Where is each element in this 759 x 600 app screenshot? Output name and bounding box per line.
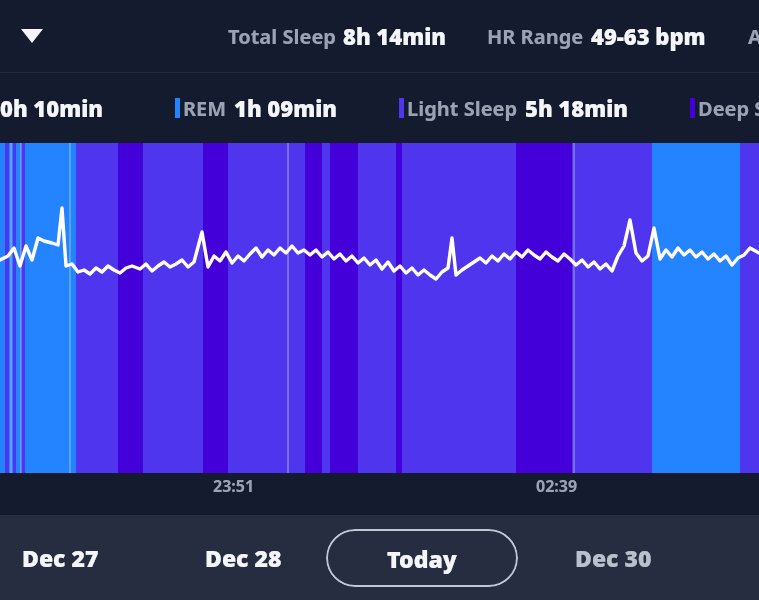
button[interactable]: HR Range — [487, 21, 706, 51]
button[interactable]: Today — [326, 529, 518, 587]
staticText: 49-63 bpm — [591, 21, 706, 51]
button[interactable]: Light Sleep — [399, 93, 629, 123]
button[interactable]: Dec 30 — [575, 542, 652, 573]
staticText: REM — [183, 95, 227, 122]
staticText: Today — [387, 543, 457, 574]
button[interactable]: Deep S — [690, 93, 759, 123]
staticText: 02:39 — [536, 475, 578, 497]
button[interactable]: Dec 28 — [205, 542, 282, 573]
staticText: A — [748, 23, 759, 50]
button[interactable]: REM — [175, 93, 338, 123]
staticText: Total Sleep — [228, 23, 336, 50]
staticText: 0h 10min — [0, 93, 104, 123]
staticText: 1h 09min — [234, 93, 338, 123]
staticText: 5h 18min — [525, 93, 629, 123]
staticText: Light Sleep — [407, 95, 518, 122]
staticText: 8h 14min — [343, 21, 447, 51]
button[interactable]: Total Sleep — [228, 21, 447, 51]
button[interactable]: Dec 27 — [22, 542, 99, 573]
button[interactable]: Collapse — [12, 16, 52, 56]
staticText: HR Range — [487, 23, 584, 50]
staticText: 23:51 — [213, 475, 255, 497]
staticText: Deep S — [698, 95, 759, 122]
button[interactable] — [0, 143, 759, 473]
